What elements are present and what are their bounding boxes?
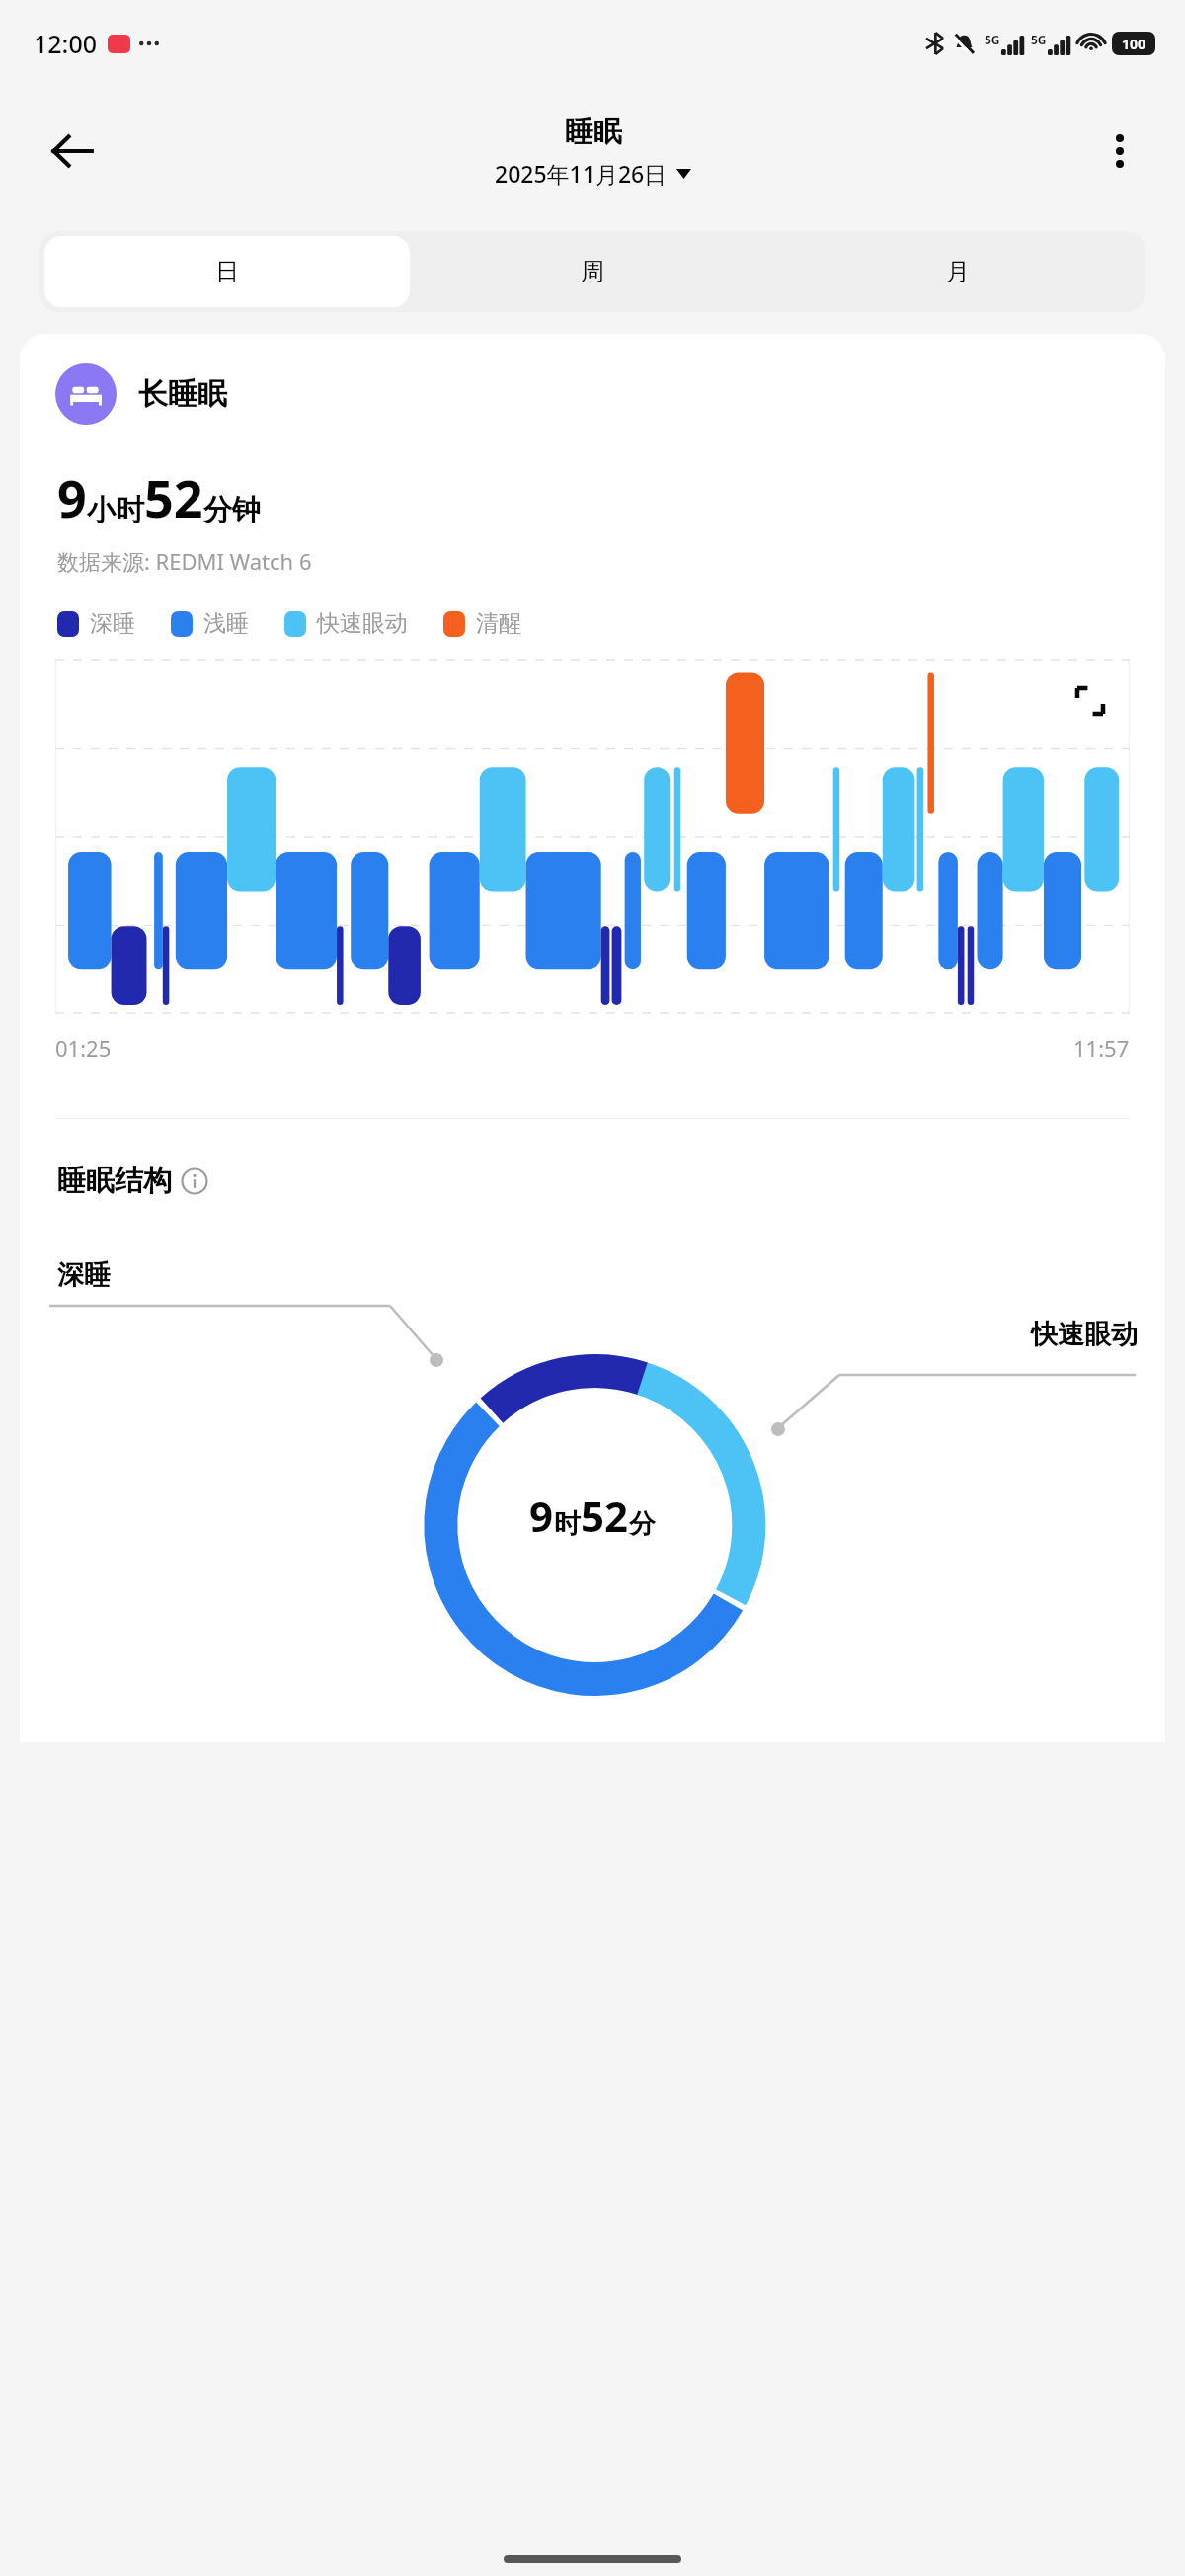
staticText: 周 (581, 257, 604, 286)
staticText: 数据来源: REDMI Watch 6 (57, 546, 312, 576)
staticText: 睡眠 (565, 114, 622, 150)
staticText: 月 (946, 257, 970, 286)
staticText: 快速眼动 (317, 609, 408, 638)
staticText: 5G (985, 32, 1000, 47)
staticText: 深睡 (90, 609, 135, 638)
button[interactable]: Back (39, 119, 105, 184)
staticText: 52 (581, 1488, 629, 1544)
staticText: 清醒 (476, 609, 521, 638)
staticText: 9 (57, 462, 87, 532)
staticText: 时 (554, 1507, 581, 1541)
staticText: 2025年11月26日 (495, 158, 668, 189)
staticText: 12:00 (34, 27, 98, 60)
button[interactable]: 月 (775, 236, 1141, 307)
staticText: 52 (144, 462, 203, 532)
button[interactable]: More options (1090, 121, 1149, 181)
staticText: 深睡 (57, 1258, 111, 1292)
button[interactable]: Info (180, 1167, 209, 1196)
staticText: 9 (529, 1488, 554, 1544)
staticText: 睡眠结构 (57, 1163, 172, 1199)
button[interactable]: 日 (44, 236, 410, 307)
staticText: 分 (629, 1507, 656, 1541)
staticText: 01:25 (55, 1033, 112, 1063)
staticText: 5G (1031, 32, 1047, 47)
button[interactable]: Expand chart (1061, 672, 1120, 731)
staticText: 小时 (87, 492, 144, 528)
staticText: 长睡眠 (138, 375, 227, 413)
button[interactable]: 2025年11月26日 (495, 158, 691, 189)
staticText: 快速眼动 (1031, 1318, 1138, 1351)
staticText: 分钟 (203, 492, 261, 528)
staticText: 浅睡 (203, 609, 249, 638)
staticText: 11:57 (1073, 1033, 1130, 1063)
staticText: 100 (1122, 35, 1146, 53)
button[interactable]: 周 (410, 236, 775, 307)
staticText: 日 (215, 257, 239, 286)
